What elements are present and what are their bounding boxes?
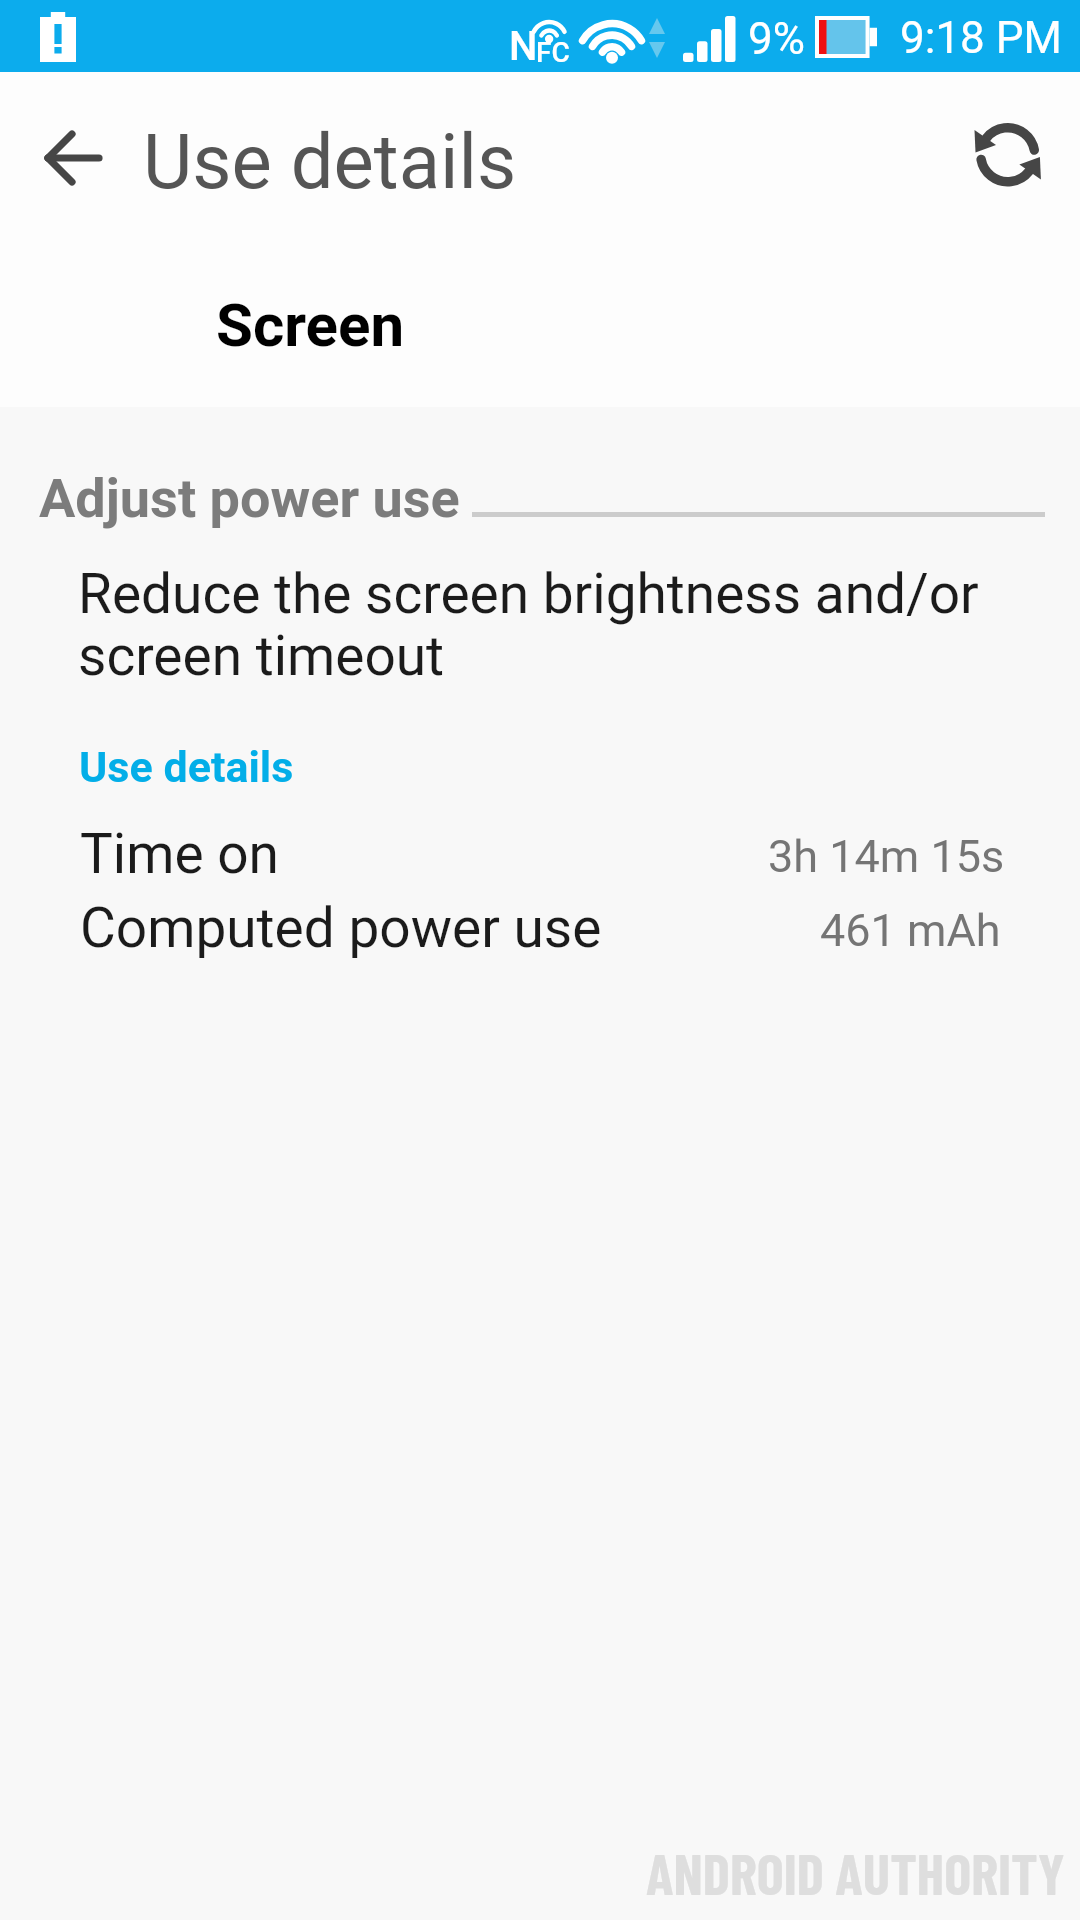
staticText: Use details: [79, 742, 294, 792]
staticText: Reduce the screen brightness and/or: [78, 562, 979, 626]
staticText: 461 mAh: [820, 904, 1001, 957]
staticText: ANDROID AUTHORITY: [646, 1838, 1065, 1906]
staticText: Use details: [143, 117, 517, 206]
button[interactable]: Back: [28, 112, 120, 204]
staticText: Computed power use: [80, 896, 602, 960]
button[interactable]: Time on: [0, 812, 1080, 886]
staticText: Adjust power use: [39, 467, 460, 530]
staticText: Time on: [80, 822, 279, 886]
staticText: 3h 14m 15s: [768, 830, 1005, 883]
staticText: 9%: [748, 13, 805, 65]
staticText: FC: [536, 36, 570, 69]
button[interactable]: Use details: [79, 728, 295, 800]
staticText: 9:18 PM: [900, 12, 1062, 64]
staticText: Screen: [216, 290, 405, 360]
staticText: screen timeout: [78, 624, 445, 688]
staticText: N: [509, 23, 538, 70]
button[interactable]: Computed power use: [0, 886, 1080, 960]
button[interactable]: Refresh: [960, 107, 1060, 207]
